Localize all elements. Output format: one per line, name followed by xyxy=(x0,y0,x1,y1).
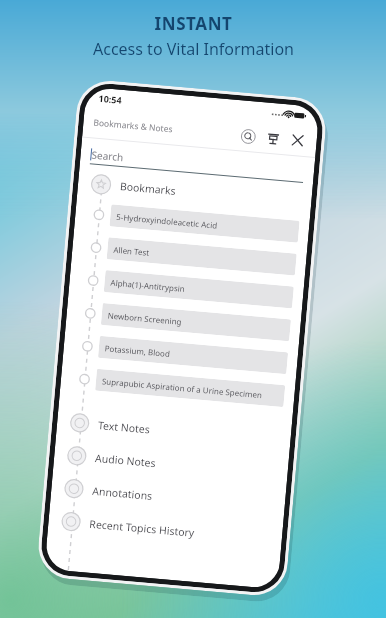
staticText: Bookmarks xyxy=(119,179,176,198)
staticText: 10:54 xyxy=(98,92,123,106)
staticText: INSTANT xyxy=(154,12,233,35)
button[interactable]: Audio Notes xyxy=(53,437,289,491)
button[interactable]: Filter xyxy=(262,127,284,149)
staticText: Alpha(1)-Antitrypsin xyxy=(110,277,186,294)
staticText: Suprapubic Aspiration of a Urine Specime… xyxy=(101,375,263,400)
staticText: Bookmarks & Notes xyxy=(93,116,174,135)
staticText: Text Notes xyxy=(97,418,150,436)
button[interactable]: Alpha(1)-Antitrypsin xyxy=(68,263,304,313)
staticText: Potassium, Blood xyxy=(104,342,171,359)
button[interactable]: 5-Hydroxyindoleacetic Acid xyxy=(74,197,310,248)
button[interactable]: Search xyxy=(237,125,259,147)
button[interactable]: Potassium, Blood xyxy=(63,329,298,379)
button[interactable]: Bookmarks xyxy=(77,167,313,218)
staticText: Annotations xyxy=(92,484,154,503)
button[interactable]: Annotations xyxy=(50,470,286,524)
button[interactable]: Recent Topics History xyxy=(47,503,283,556)
button[interactable]: Search xyxy=(90,147,304,183)
staticText: Recent Topics History xyxy=(89,517,196,540)
staticText: Allen Test xyxy=(113,244,150,258)
staticText: Access to Vital Information xyxy=(93,38,294,60)
button[interactable]: Newborn Screening xyxy=(66,296,301,346)
staticText: Audio Notes xyxy=(95,451,157,470)
button[interactable]: Allen Test xyxy=(71,230,307,280)
button[interactable]: Text Notes xyxy=(56,404,292,458)
staticText: Search xyxy=(91,147,124,164)
button[interactable]: Close xyxy=(287,129,308,151)
staticText: 5-Hydroxyindoleacetic Acid xyxy=(116,211,218,231)
staticText: Newborn Screening xyxy=(107,309,183,327)
button[interactable]: Suprapubic Aspiration of a Urine Specime… xyxy=(60,362,296,412)
